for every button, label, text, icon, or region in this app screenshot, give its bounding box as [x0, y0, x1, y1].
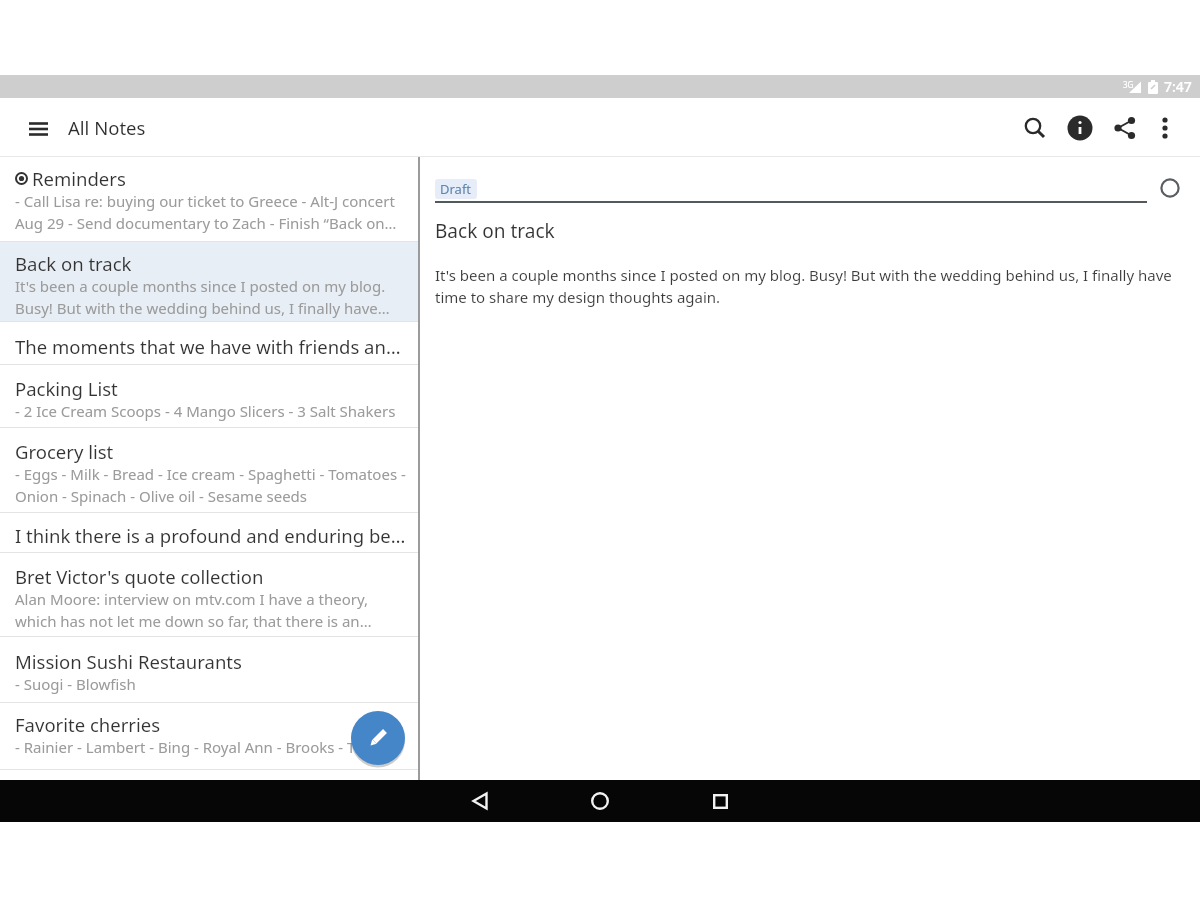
staticText: - 2 Ice Cream Scoops - 4 Mango Slicers -…	[15, 401, 396, 421]
staticText: - Eggs - Milk - Bread - Ice cream - Spag…	[15, 464, 406, 507]
button[interactable]: I think there is a profound and enduring…	[0, 513, 418, 553]
button[interactable]	[1057, 105, 1103, 151]
staticText: 7:47	[1164, 77, 1192, 96]
button[interactable]	[22, 112, 54, 144]
staticText: Mission Sushi Restaurants	[15, 649, 242, 674]
staticText: Packing List	[15, 376, 118, 401]
button[interactable]	[1013, 106, 1057, 150]
staticText: I think there is a profound and enduring…	[15, 523, 406, 548]
staticText: - Suogi - Blowfish	[15, 674, 136, 694]
staticText: Grocery list	[15, 439, 114, 464]
button[interactable]: Reminders	[0, 157, 418, 242]
button[interactable]: Favorite cherries	[0, 703, 418, 770]
staticText: - Call Lisa re: buying our ticket to Gre…	[15, 191, 397, 234]
staticText: - Rainier - Lambert - Bing - Royal Ann -…	[15, 737, 367, 757]
staticText: All Notes	[68, 115, 146, 140]
button[interactable]	[1103, 106, 1147, 150]
button[interactable]	[1160, 178, 1180, 198]
button[interactable]	[458, 780, 502, 822]
button[interactable]: Grocery list	[0, 428, 418, 513]
button[interactable]: Back on track	[0, 242, 418, 322]
button[interactable]: Packing List	[0, 365, 418, 428]
staticText: 3G	[1123, 79, 1134, 90]
button[interactable]	[1147, 110, 1183, 146]
button[interactable]	[578, 780, 622, 822]
staticText: It's been a couple months since I posted…	[15, 276, 390, 319]
button[interactable]: Mission Sushi Restaurants	[0, 637, 418, 703]
staticText: Alan Moore: interview on mtv.com I have …	[15, 589, 372, 632]
staticText: Back on track	[15, 251, 132, 276]
staticText: Favorite cherries	[15, 712, 161, 737]
button[interactable]: The moments that we have with friends an…	[0, 322, 418, 365]
staticText: Bret Victor's quote collection	[15, 564, 264, 589]
button[interactable]: Draft	[435, 179, 477, 199]
staticText: Draft	[440, 180, 472, 198]
button[interactable]: Bret Victor's quote collection	[0, 553, 418, 637]
button[interactable]	[698, 780, 742, 822]
staticText: Back on track	[435, 218, 555, 244]
staticText: Reminders	[32, 166, 126, 191]
staticText: It's been a couple months since I posted…	[435, 265, 1172, 307]
button[interactable]	[351, 711, 405, 765]
staticText: The moments that we have with friends an…	[15, 334, 401, 359]
